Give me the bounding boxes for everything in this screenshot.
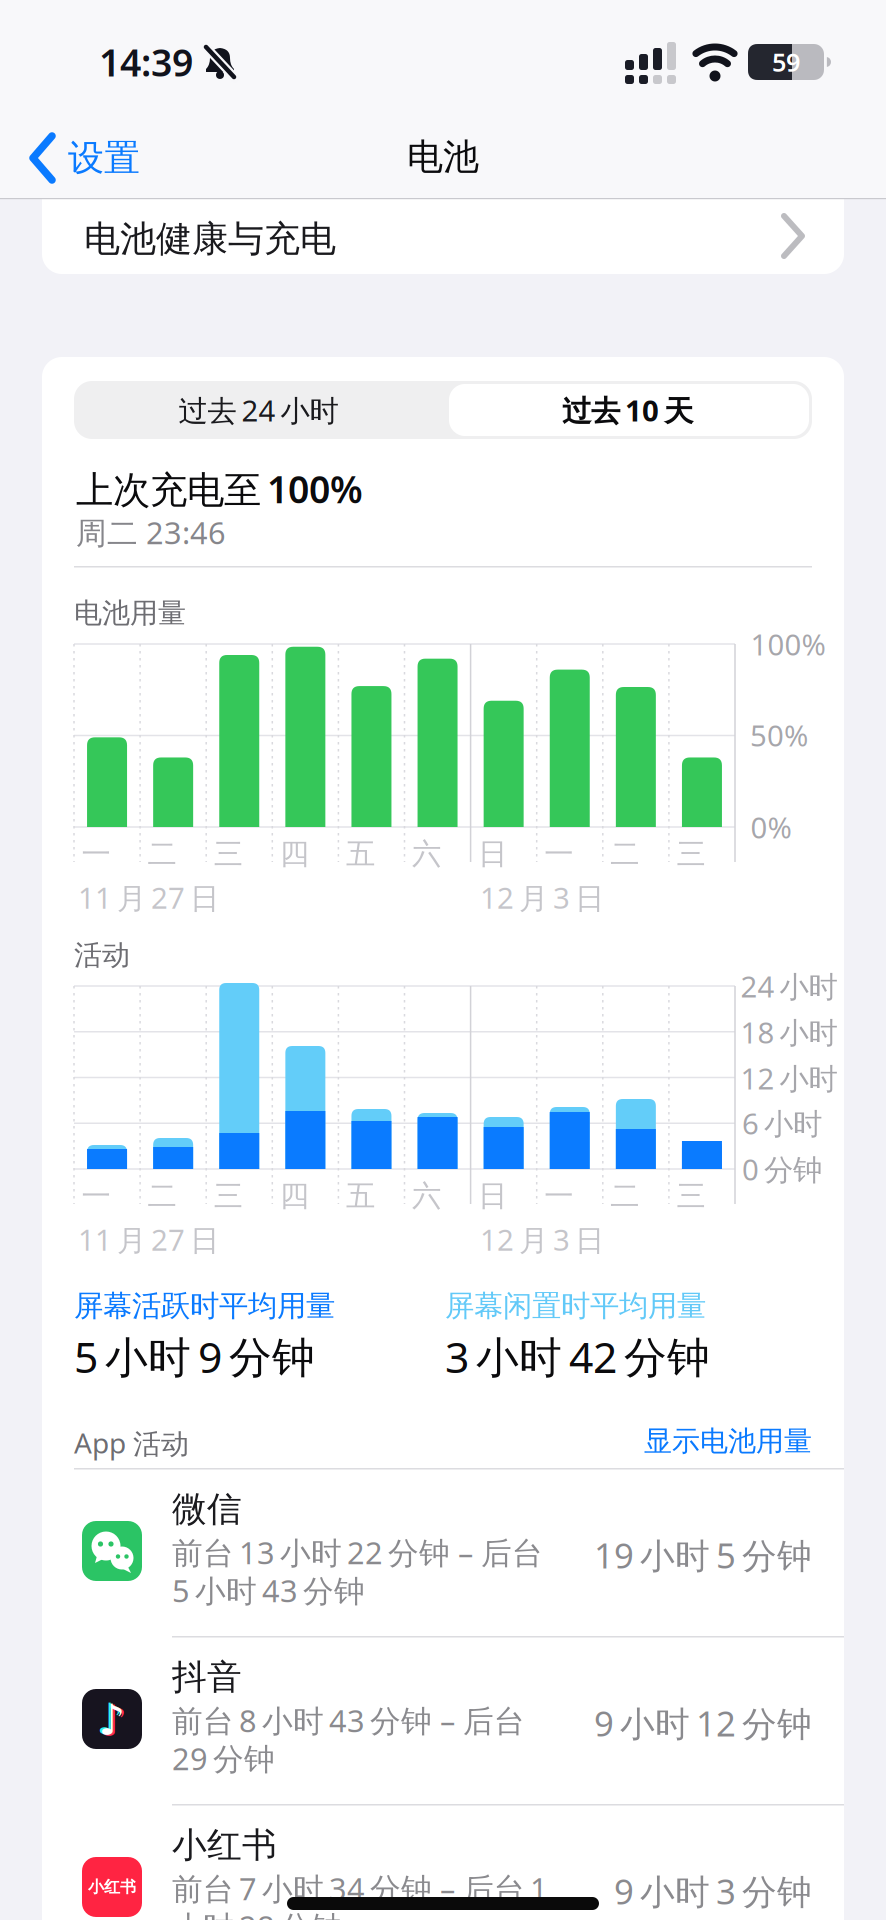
staticText: 三	[676, 836, 705, 872]
staticText: 周二 23:46	[76, 512, 226, 553]
staticText: 五	[346, 836, 375, 872]
staticText: 小红书	[172, 1824, 277, 1867]
staticText: 活动	[74, 938, 130, 972]
staticText: 过去 10 天	[562, 390, 693, 429]
staticText: 电池健康与充电	[84, 217, 336, 261]
button[interactable]: 小红书	[42, 1806, 844, 1920]
staticText: 三	[214, 836, 243, 872]
staticText: 二	[148, 836, 177, 872]
staticText: 三	[676, 1178, 705, 1214]
staticText: 六	[412, 1178, 441, 1214]
staticText: App 活动	[74, 1424, 189, 1461]
staticText: 前台 13 小时 22 分钟 – 后台	[172, 1532, 543, 1573]
staticText: 过去 24 小时	[178, 390, 338, 429]
staticText: 一	[81, 836, 110, 872]
staticText: 六	[412, 836, 441, 872]
staticText: ♪	[100, 1697, 127, 1745]
staticText: 9 小时 3 分钟	[614, 1868, 812, 1914]
staticText: 12 月 3 日	[480, 878, 604, 917]
staticText: 14:39	[99, 37, 193, 87]
staticText: 抖音	[172, 1656, 242, 1699]
staticText: 59	[772, 45, 800, 79]
staticText: 29 分钟	[172, 1738, 275, 1779]
staticText: 微信	[172, 1488, 242, 1531]
staticText: 一	[544, 836, 573, 872]
button[interactable]: 返回设置	[30, 128, 140, 188]
staticText: 9 小时 12 分钟	[594, 1700, 812, 1746]
staticText: 日	[478, 836, 507, 872]
staticText: 二	[610, 836, 639, 872]
staticText: 50%	[750, 715, 808, 754]
staticText: 设置	[68, 136, 140, 180]
staticText: 12 月 3 日	[480, 1220, 604, 1259]
staticText: 0 分钟	[742, 1149, 822, 1188]
staticText: 屏幕闲置时平均用量	[445, 1288, 706, 1324]
staticText: 5 小时 9 分钟	[74, 1328, 315, 1385]
staticText: 100%	[750, 624, 825, 663]
staticText: 屏幕活跃时平均用量	[74, 1288, 335, 1324]
staticText: 5 小时 43 分钟	[172, 1570, 365, 1611]
staticText: 三	[214, 1178, 243, 1214]
staticText: 19 小时 5 分钟	[594, 1532, 812, 1578]
staticText: 二	[610, 1178, 639, 1214]
staticText: 24 小时	[740, 966, 837, 1005]
staticText: 12 小时	[740, 1058, 837, 1097]
button[interactable]: 过去 24 小时	[74, 381, 443, 439]
staticText: 电池用量	[74, 596, 186, 630]
staticText: 11 月 27 日	[78, 1220, 219, 1259]
staticText: 四	[280, 836, 309, 872]
button[interactable]: 电池健康与充电	[42, 199, 844, 274]
staticText: ♪	[98, 1696, 125, 1744]
staticText: 3 小时 42 分钟	[445, 1328, 710, 1385]
staticText: 电池	[407, 135, 479, 179]
staticText: ♪	[96, 1695, 123, 1743]
staticText: 一	[81, 1178, 110, 1214]
staticText: 二	[148, 1178, 177, 1214]
staticText: 显示电池用量	[644, 1424, 812, 1458]
staticText: 前台 8 小时 43 分钟 – 后台	[172, 1700, 525, 1741]
staticText: 五	[346, 1178, 375, 1214]
staticText: 日	[478, 1178, 507, 1214]
staticText: 一	[544, 1178, 573, 1214]
staticText: 小时 28 分钟	[172, 1906, 342, 1920]
staticText: 18 小时	[740, 1012, 837, 1051]
staticText: 前台 7 小时 34 分钟 – 后台 1	[172, 1868, 548, 1909]
staticText: 0%	[750, 807, 791, 846]
staticText: 上次充电至 100%	[76, 464, 363, 514]
staticText: 6 小时	[742, 1103, 822, 1142]
button[interactable]: ♪	[42, 1638, 844, 1805]
staticText: 小红书	[88, 1877, 136, 1897]
button[interactable]: 微信	[42, 1470, 844, 1637]
staticText: 11 月 27 日	[78, 878, 219, 917]
staticText: 四	[280, 1178, 309, 1214]
button[interactable]: 过去 10 天	[443, 381, 812, 439]
button[interactable]: 显示电池用量	[644, 1424, 812, 1458]
